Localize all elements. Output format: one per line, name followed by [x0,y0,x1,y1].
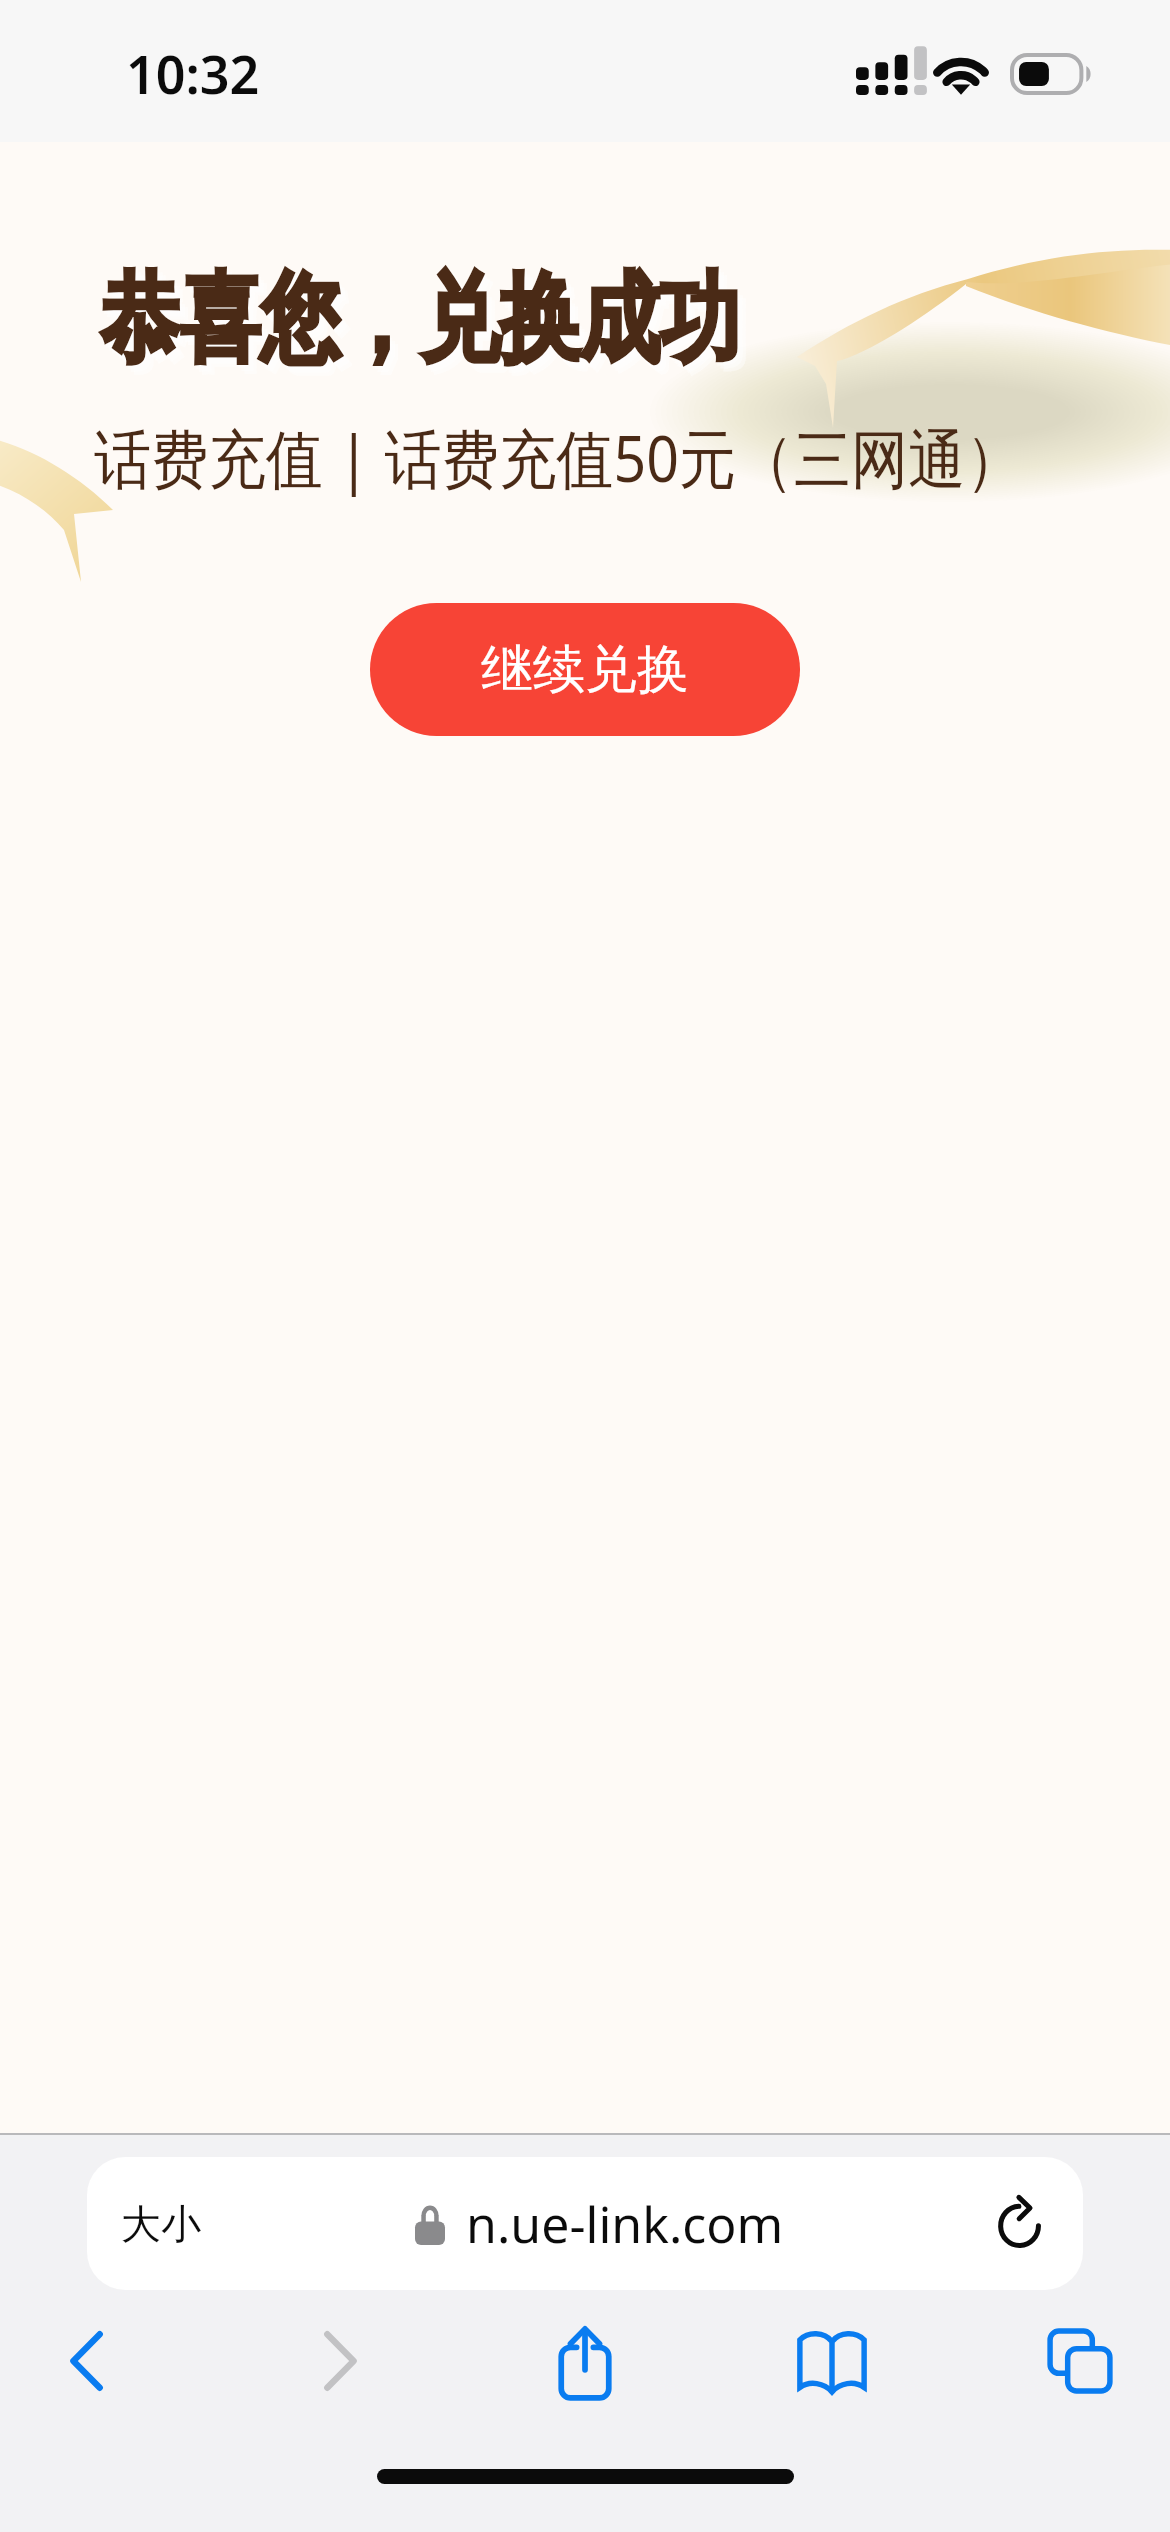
staticText: n.ue-link.com [466,2190,784,2258]
button[interactable]: 继续兑换 [370,603,800,736]
staticText: 大小 [121,2199,201,2249]
staticText: 恭喜您，兑换成功 [100,259,739,381]
button[interactable]: 大小 [87,2157,1083,2290]
staticText: 10:32 [126,38,260,109]
button[interactable]: Forward [280,2301,400,2421]
staticText: 恭喜您，兑换成功 [102,262,741,384]
staticText: 恭喜您，兑换成功 [108,268,747,390]
button[interactable]: Reload page [977,2174,1063,2260]
staticText: 恭喜您，兑换成功 [105,265,744,387]
staticText: 继续兑换 [481,637,689,703]
staticText: 话费充值 | 话费充值50元（三网通） [94,414,1023,501]
button[interactable]: Tabs [1020,2301,1140,2421]
button[interactable]: Back [27,2301,147,2421]
button[interactable]: Share [525,2301,645,2421]
button[interactable]: Bookmarks [772,2301,892,2421]
